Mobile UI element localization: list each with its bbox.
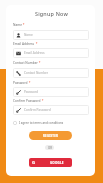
button[interactable]: Password: [16, 87, 86, 97]
staticText: I agree to terms and conditions: [19, 121, 64, 125]
button[interactable]: Confirm Password: [16, 105, 86, 115]
staticText: Name: [24, 33, 33, 37]
staticText: Name: [13, 23, 22, 27]
staticText: Contact Number: [24, 71, 49, 75]
staticText: OR: [48, 146, 52, 150]
staticText: Confirm Password: [13, 99, 41, 103]
staticText: Signup Now: [35, 10, 68, 17]
button[interactable]: G: [29, 158, 72, 167]
button[interactable]: Name: [16, 30, 86, 40]
staticText: *: [28, 81, 31, 85]
staticText: Email Address: [24, 51, 45, 55]
staticText: Email Address: [13, 42, 35, 46]
staticText: *: [35, 42, 38, 46]
staticText: Confirm Password: [24, 108, 51, 112]
staticText: *: [38, 61, 41, 65]
staticText: Password: [24, 90, 38, 94]
staticText: G: [32, 160, 36, 166]
button[interactable]: Email Address: [16, 48, 86, 58]
button[interactable]: I agree to terms and conditions: [13, 120, 91, 126]
staticText: GOOGLE: [50, 161, 64, 165]
button[interactable]: Contact Number: [16, 68, 86, 78]
staticText: REGISTER: [43, 134, 59, 138]
staticText: *: [22, 23, 25, 27]
staticText: Contact Number: [13, 61, 38, 65]
staticText: *: [41, 99, 44, 103]
button[interactable]: REGISTER: [29, 131, 72, 140]
staticText: Password: [13, 81, 28, 85]
